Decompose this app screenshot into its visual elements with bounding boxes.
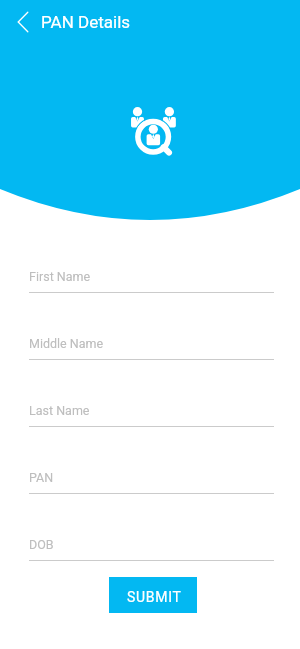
staticText: SUBMIT (127, 589, 182, 605)
staticText: DOB (29, 537, 54, 552)
staticText: Last Name (29, 403, 90, 418)
staticText: PAN (29, 470, 54, 485)
staticText: Middle Name (29, 336, 104, 351)
staticText: First Name (29, 269, 91, 284)
button[interactable]: Back (0, 0, 41, 44)
staticText: PAN Details (41, 12, 131, 32)
button[interactable]: SUBMIT (109, 577, 197, 613)
